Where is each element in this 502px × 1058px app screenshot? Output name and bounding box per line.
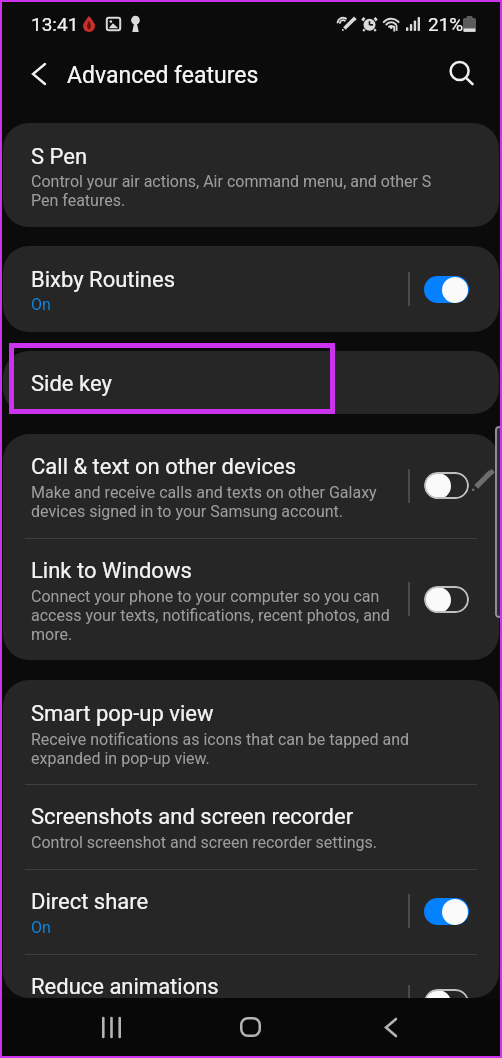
- button[interactable]: Search: [438, 50, 486, 98]
- button[interactable]: Switch on: [424, 276, 469, 303]
- staticText: Direct share: [31, 889, 149, 915]
- button[interactable]: [3, 868, 499, 953]
- button[interactable]: Switch off: [424, 989, 469, 998]
- button[interactable]: Recent apps: [73, 998, 149, 1058]
- button[interactable]: [3, 954, 499, 998]
- staticText: Make and receive calls and texts on othe…: [31, 483, 377, 502]
- staticText: Pen features.: [31, 191, 126, 210]
- staticText: more.: [31, 625, 73, 644]
- staticText: Smart pop-up view: [31, 701, 214, 727]
- staticText: Advanced features: [67, 62, 259, 89]
- staticText: On: [31, 918, 51, 937]
- button[interactable]: [3, 123, 499, 227]
- button[interactable]: Switch off: [424, 472, 469, 499]
- button[interactable]: [3, 434, 499, 538]
- button[interactable]: [3, 539, 499, 660]
- button[interactable]: [3, 784, 499, 867]
- button[interactable]: [3, 246, 499, 332]
- staticText: Screenshots and screen recorder: [31, 804, 354, 830]
- staticText: Bixby Routines: [31, 267, 176, 293]
- button[interactable]: Switch off: [424, 586, 469, 613]
- staticText: Call & text on other devices: [31, 454, 297, 480]
- staticText: expanded in pop-up view.: [31, 749, 210, 768]
- button[interactable]: Back: [352, 998, 428, 1058]
- staticText: On: [31, 295, 51, 314]
- staticText: S Pen: [31, 144, 88, 170]
- button[interactable]: [3, 680, 499, 783]
- staticText: 21%: [428, 13, 464, 35]
- staticText: Receive notifications as icons that can …: [31, 730, 410, 749]
- button[interactable]: Home: [212, 998, 288, 1058]
- staticText: Control your air actions, Air command me…: [31, 172, 432, 191]
- button[interactable]: Switch on: [424, 898, 469, 925]
- staticText: 13:41: [31, 13, 79, 35]
- staticText: Link to Windows: [31, 558, 192, 584]
- staticText: access your texts, notifications, recent…: [31, 606, 390, 625]
- staticText: Connect your phone to your computer so y…: [31, 587, 380, 606]
- staticText: devices signed in to your Samsung accoun…: [31, 502, 344, 521]
- button[interactable]: Navigate up: [15, 50, 63, 98]
- button[interactable]: [3, 351, 499, 414]
- staticText: Control screenshot and screen recorder s…: [31, 833, 378, 852]
- staticText: Side key: [31, 371, 112, 397]
- staticText: Reduce animations: [31, 974, 219, 998]
